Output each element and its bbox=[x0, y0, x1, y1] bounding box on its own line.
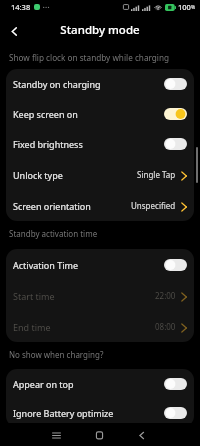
button[interactable]: Back bbox=[129, 423, 155, 446]
button[interactable]: Ignore Battery optimize bbox=[6, 398, 194, 427]
staticText: 14:38 bbox=[11, 2, 31, 12]
button[interactable]: Recents bbox=[43, 423, 69, 446]
button[interactable]: Screen orientation bbox=[6, 190, 194, 221]
staticText: 08:00 bbox=[155, 321, 176, 332]
staticText: 100 bbox=[178, 2, 191, 12]
button[interactable]: Fixed brightness bbox=[6, 129, 194, 159]
button[interactable]: End time bbox=[6, 311, 194, 342]
staticText: Unspecified bbox=[131, 200, 176, 211]
staticText: Activation Time bbox=[13, 259, 164, 271]
staticText: End time bbox=[13, 321, 155, 333]
staticText: Single Tap bbox=[137, 169, 176, 180]
staticText: Show flip clock on standby while chargin… bbox=[9, 52, 170, 63]
button[interactable]: Appear on top bbox=[6, 369, 194, 398]
staticText: Unlock type bbox=[13, 169, 137, 181]
staticText: Fixed brightness bbox=[13, 138, 164, 150]
button[interactable]: Activation Time bbox=[6, 249, 194, 280]
staticText: Standby activation time bbox=[9, 228, 98, 239]
button[interactable]: Home bbox=[86, 423, 112, 446]
staticText: No show when charging? bbox=[9, 349, 104, 360]
button[interactable]: Standby on charging bbox=[6, 69, 194, 99]
staticText: Keep screen on bbox=[13, 108, 164, 120]
staticText: Standby on charging bbox=[13, 78, 164, 90]
staticText: Start time bbox=[13, 290, 155, 302]
staticText: 22:00 bbox=[155, 290, 176, 301]
staticText: % bbox=[191, 4, 196, 11]
staticText: Ignore Battery optimize bbox=[13, 407, 164, 419]
staticText: Screen orientation bbox=[13, 200, 131, 212]
staticText: Standby mode bbox=[60, 22, 140, 38]
button[interactable]: Start time bbox=[6, 280, 194, 311]
button[interactable]: Keep screen on bbox=[6, 99, 194, 129]
staticText: Appear on top bbox=[13, 378, 164, 390]
button[interactable]: Unlock type bbox=[6, 159, 194, 190]
button[interactable]: Back bbox=[2, 19, 26, 43]
